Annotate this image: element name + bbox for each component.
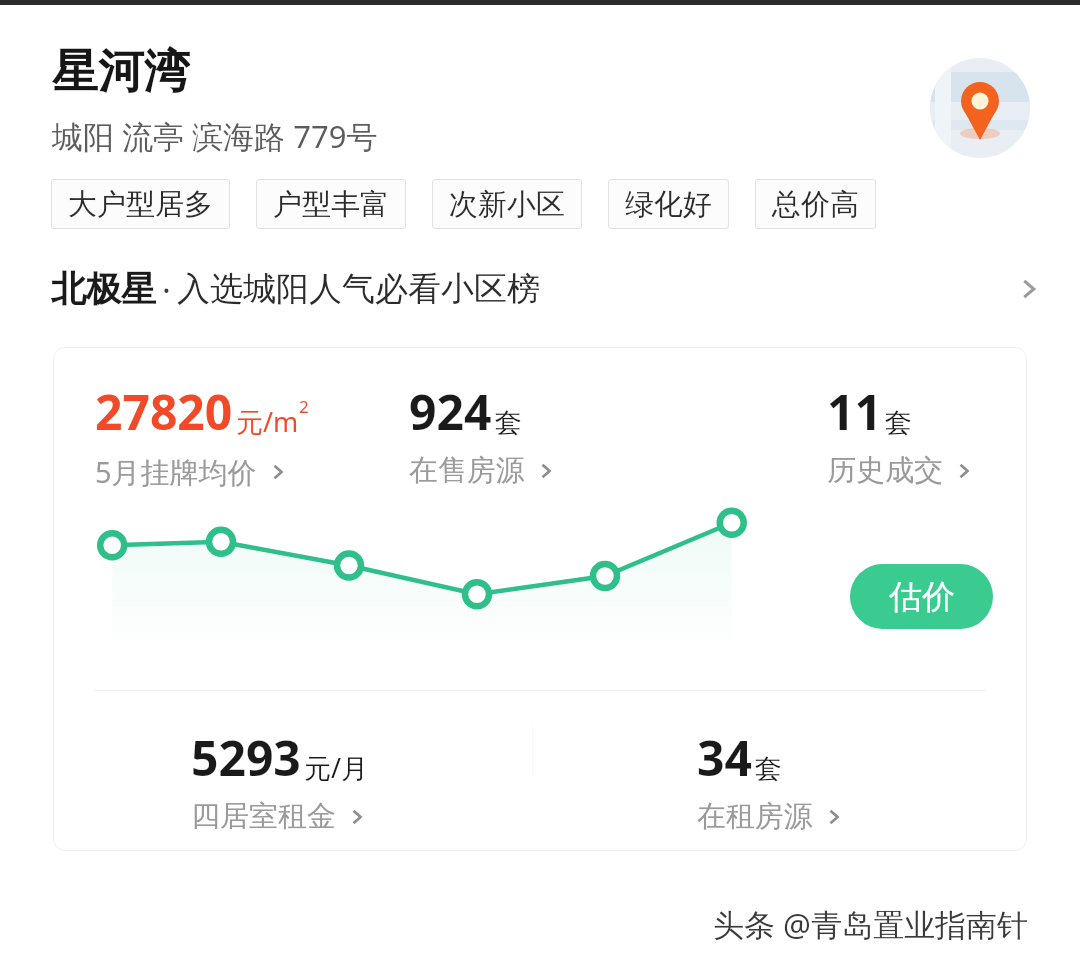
staticText: 总价高 (772, 186, 859, 223)
button[interactable]: 地图 (930, 58, 1030, 158)
staticText: 绿化好 (625, 186, 712, 223)
staticText: 元/m (236, 403, 299, 440)
staticText: 套 (885, 406, 912, 440)
staticText: 924 (409, 379, 492, 444)
button[interactable]: 大户型居多 (51, 179, 230, 229)
staticText: 星河湾 (52, 43, 190, 101)
button[interactable]: 27820 (95, 379, 309, 492)
staticText: 四居室租金 (191, 798, 336, 835)
staticText: 大户型居多 (68, 186, 213, 223)
staticText: · (162, 267, 171, 312)
staticText: 城阳 流亭 滨海路 779号 (52, 115, 378, 157)
staticText: 套 (755, 752, 782, 786)
staticText: 估价 (889, 576, 955, 618)
staticText: 在租房源 (697, 798, 813, 835)
staticText: 入选城阳人气必看小区榜 (177, 268, 540, 310)
staticText: 头条 @青岛置业指南针 (713, 903, 1028, 945)
staticText: 5293 (191, 725, 301, 790)
staticText: 5月挂牌均价 (95, 452, 257, 492)
staticText: 户型丰富 (273, 186, 389, 223)
button[interactable]: 绿化好 (608, 179, 729, 229)
button[interactable]: 34 (697, 725, 845, 835)
button[interactable]: 924 (409, 379, 557, 489)
button[interactable]: 北极星 (0, 257, 1080, 321)
button[interactable]: 次新小区 (432, 179, 582, 229)
staticText: 27820 (95, 379, 233, 444)
staticText: 元/月 (304, 749, 369, 786)
staticText: 历史成交 (827, 452, 943, 489)
staticText: 11 (827, 379, 882, 444)
button[interactable]: 总价高 (755, 179, 876, 229)
button[interactable]: 5293 (191, 725, 369, 835)
staticText: 套 (495, 406, 522, 440)
button[interactable]: 估价 (850, 564, 993, 629)
button[interactable]: 户型丰富 (256, 179, 406, 229)
button[interactable]: 11 (827, 379, 975, 489)
staticText: 北极星 (51, 267, 156, 311)
staticText: 2 (299, 395, 309, 418)
staticText: 在售房源 (409, 452, 525, 489)
staticText: 次新小区 (449, 186, 565, 223)
staticText: 34 (697, 725, 752, 790)
